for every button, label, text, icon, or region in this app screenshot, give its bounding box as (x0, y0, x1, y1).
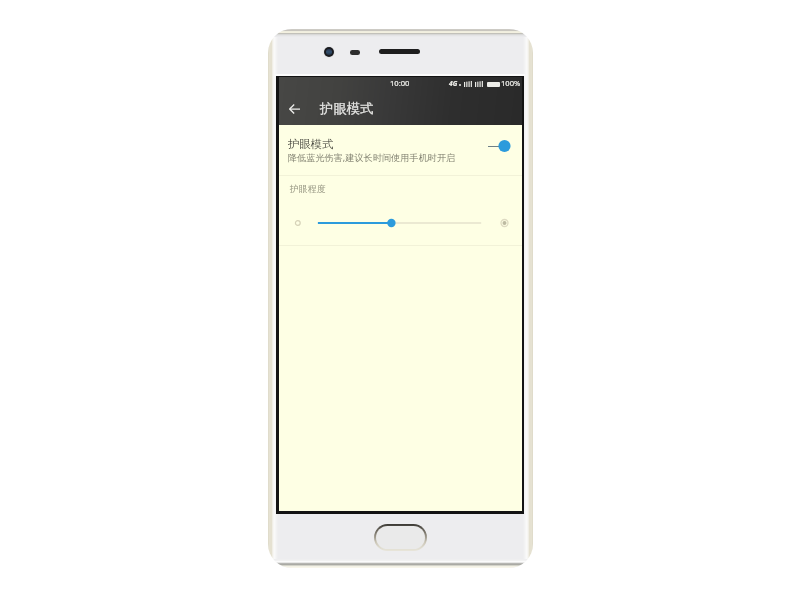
staticText: 降低蓝光伤害,建议长时间使用手机时开启 (288, 151, 455, 163)
button[interactable] (279, 125, 522, 175)
button[interactable]: Eye protection mode toggle (488, 139, 512, 153)
button[interactable]: Back (284, 99, 305, 119)
staticText: 护眼模式 (320, 100, 374, 117)
staticText: 4G (449, 79, 458, 88)
staticText: 护眼程度 (290, 183, 326, 194)
staticText: 100% (501, 78, 521, 88)
staticText: 10:00 (390, 78, 410, 88)
staticText: 护眼模式 (288, 137, 334, 151)
button[interactable]: Home (374, 524, 427, 551)
